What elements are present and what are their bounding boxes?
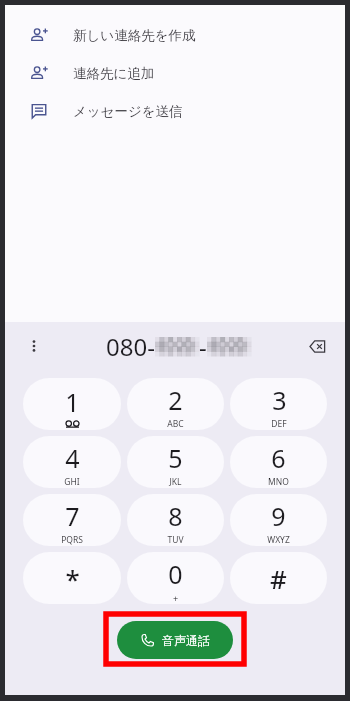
staticText: PQRS xyxy=(61,534,83,546)
button[interactable]: 1 xyxy=(23,378,121,430)
button[interactable]: # xyxy=(230,552,327,604)
button[interactable]: 9 xyxy=(230,494,327,546)
staticText: + xyxy=(173,592,179,604)
staticText: 0 xyxy=(168,557,183,591)
staticText: MNO xyxy=(268,476,289,488)
staticText: ABC xyxy=(167,418,184,430)
button[interactable]: 3 xyxy=(230,378,327,430)
staticText: 6 xyxy=(271,441,286,475)
staticText: 080- xyxy=(106,330,155,363)
button[interactable]: 4 xyxy=(23,436,121,488)
button[interactable]: 5 xyxy=(127,436,224,488)
button[interactable]: 8 xyxy=(127,494,224,546)
staticText: TUV xyxy=(167,534,184,546)
button[interactable]: 連絡先に追加 xyxy=(5,54,345,92)
staticText: 4 xyxy=(65,441,80,475)
staticText: * xyxy=(65,561,80,596)
staticText: - xyxy=(199,330,207,363)
staticText: メッセージを送信 xyxy=(73,103,183,120)
staticText: 5 xyxy=(168,441,183,475)
button[interactable]: * xyxy=(23,552,121,604)
staticText: 1 xyxy=(65,385,80,419)
staticText: 新しい連絡先を作成 xyxy=(73,27,196,44)
button[interactable]: 2 xyxy=(127,378,224,430)
staticText: DEF xyxy=(271,418,287,430)
button[interactable]: 新しい連絡先を作成 xyxy=(5,16,345,54)
staticText: GHI xyxy=(64,476,80,488)
staticText: 7 xyxy=(65,499,80,533)
staticText: 2 xyxy=(168,383,183,417)
button[interactable]: 削除 xyxy=(301,330,333,362)
button[interactable]: その他のオプション xyxy=(21,333,47,359)
staticText: 連絡先に追加 xyxy=(73,65,155,82)
staticText: # xyxy=(270,561,287,596)
button[interactable]: 音声通話 xyxy=(117,621,233,659)
button[interactable]: メッセージを送信 xyxy=(5,92,345,130)
staticText: WXYZ xyxy=(267,534,290,546)
button[interactable]: 7 xyxy=(23,494,121,546)
button[interactable]: 6 xyxy=(230,436,327,488)
staticText: 音声通話 xyxy=(162,633,210,648)
staticText: 3 xyxy=(272,383,287,417)
staticText: 8 xyxy=(168,499,183,533)
staticText: 9 xyxy=(271,499,286,533)
staticText: JKL xyxy=(169,476,182,488)
button[interactable]: 0 xyxy=(127,552,224,604)
